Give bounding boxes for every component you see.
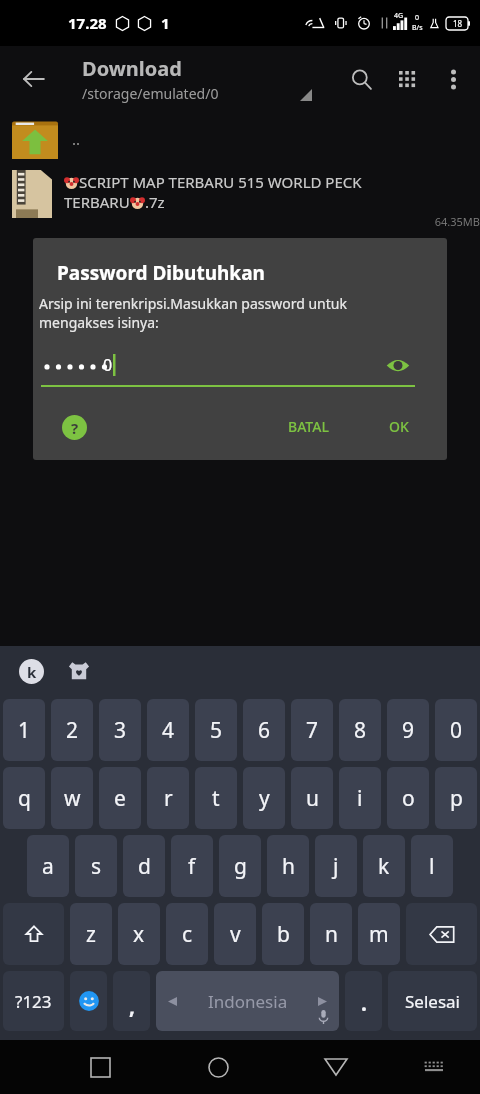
staticText: SCRIPT MAP TERBARU 515 WORLD PECK	[79, 172, 362, 192]
staticText: l	[429, 852, 435, 881]
button[interactable]: z	[70, 903, 112, 965]
staticText: m	[369, 920, 389, 949]
button[interactable]: Space	[156, 971, 339, 1031]
button[interactable]: s	[75, 835, 117, 897]
staticText: 4G	[394, 11, 404, 21]
button[interactable]: Back	[12, 57, 56, 101]
button[interactable]: x	[118, 903, 160, 965]
button[interactable]: Selesai	[388, 971, 477, 1031]
staticText: B/s	[412, 23, 423, 33]
button[interactable]: 3	[99, 699, 141, 761]
button[interactable]: 1	[3, 699, 45, 761]
button[interactable]: Home	[194, 1043, 242, 1091]
button[interactable]: Backspace	[406, 903, 477, 965]
button[interactable]: g	[219, 835, 261, 897]
staticText: i	[357, 784, 363, 813]
button[interactable]: f	[171, 835, 213, 897]
button[interactable]: c	[166, 903, 208, 965]
button[interactable]: ..	[0, 111, 480, 166]
button[interactable]: l	[411, 835, 453, 897]
button[interactable]: a	[27, 835, 69, 897]
staticText: 64.35MB	[64, 214, 480, 229]
button[interactable]: 2	[51, 699, 93, 761]
staticText: ,	[129, 992, 135, 1021]
staticText: s	[91, 852, 102, 881]
button[interactable]: Search	[338, 56, 384, 102]
button[interactable]: Show password	[381, 348, 415, 382]
button[interactable]: k	[363, 835, 405, 897]
staticText: 6	[258, 716, 271, 745]
staticText: ?123	[15, 990, 52, 1013]
staticText: z	[86, 920, 96, 949]
button[interactable]: 7	[291, 699, 333, 761]
button[interactable]: t	[195, 767, 237, 829]
button[interactable]: u	[291, 767, 333, 829]
button[interactable]: SCRIPT MAP TERBARU 515 WORLD PECK	[0, 166, 480, 235]
button[interactable]: Help	[57, 410, 91, 444]
staticText: .7z	[145, 192, 165, 212]
staticText: 2	[66, 716, 79, 745]
button[interactable]: m	[358, 903, 400, 965]
button[interactable]: p	[435, 767, 477, 829]
button[interactable]: Back	[312, 1043, 360, 1091]
staticText: w	[64, 784, 81, 813]
button[interactable]: ?123	[3, 971, 64, 1031]
button[interactable]: y	[243, 767, 285, 829]
button[interactable]: 6	[243, 699, 285, 761]
button[interactable]: i	[339, 767, 381, 829]
button[interactable]: 9	[387, 699, 429, 761]
button[interactable]: ,	[113, 971, 150, 1031]
button[interactable]: 0	[435, 699, 477, 761]
button[interactable]: Shift	[3, 903, 64, 965]
button[interactable]: Themes	[62, 654, 96, 688]
button[interactable]: r	[147, 767, 189, 829]
staticText: j	[333, 852, 339, 881]
staticText: Password Dibutuhkan	[57, 260, 265, 286]
button[interactable]: .	[345, 971, 382, 1031]
button[interactable]: n	[310, 903, 352, 965]
button[interactable]: 4	[147, 699, 189, 761]
staticText: u	[306, 784, 319, 813]
staticText: 7	[306, 716, 319, 745]
staticText: 4	[162, 716, 175, 745]
staticText: BATAL	[288, 417, 329, 436]
staticText: ?	[71, 418, 79, 438]
staticText: ..	[72, 129, 81, 149]
button[interactable]: v	[214, 903, 256, 965]
button[interactable]: 8	[339, 699, 381, 761]
button[interactable]: OK	[377, 409, 421, 444]
staticText: y	[259, 784, 270, 813]
button[interactable]: Keyboard app	[14, 654, 48, 688]
staticText: Arsip ini terenkripsi.Masukkan password …	[39, 294, 411, 332]
button[interactable]: More options	[430, 56, 476, 102]
button[interactable]: 5	[195, 699, 237, 761]
button[interactable]: e	[99, 767, 141, 829]
button[interactable]: Grid view	[384, 56, 430, 102]
staticText: b	[277, 920, 290, 949]
staticText: 0	[415, 13, 420, 23]
staticText: Indonesia	[208, 990, 288, 1013]
button[interactable]: j	[315, 835, 357, 897]
staticText: 3	[114, 716, 127, 745]
button[interactable]: BATAL	[276, 409, 341, 444]
staticText: 1	[18, 716, 31, 745]
staticText: x	[133, 920, 145, 949]
staticText: 1	[161, 13, 170, 33]
button[interactable]: h	[267, 835, 309, 897]
button[interactable]: Recents	[76, 1043, 124, 1091]
staticText: 5	[210, 716, 223, 745]
button[interactable]: o	[387, 767, 429, 829]
staticText: t	[212, 784, 220, 813]
button[interactable]: q	[3, 767, 45, 829]
button[interactable]: w	[51, 767, 93, 829]
button[interactable]: d	[123, 835, 165, 897]
staticText: Selesai	[405, 990, 460, 1013]
staticText: d	[138, 852, 151, 881]
button[interactable]: b	[262, 903, 304, 965]
staticText: q	[18, 784, 31, 813]
staticText: g	[234, 852, 247, 881]
staticText: n	[325, 920, 338, 949]
button[interactable]: Emoji	[70, 971, 107, 1031]
staticText: p	[450, 784, 463, 813]
button[interactable]: Hide keyboard	[412, 1045, 456, 1089]
